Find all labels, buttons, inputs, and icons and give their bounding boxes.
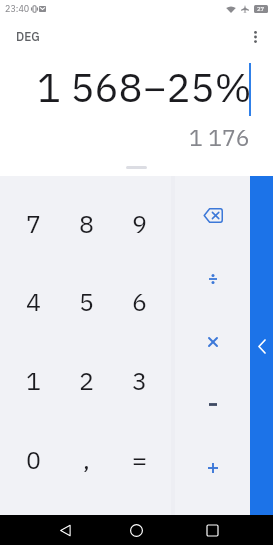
button[interactable]: Back xyxy=(47,515,83,545)
button[interactable]: Backspace xyxy=(175,184,250,247)
staticText: 6 xyxy=(132,285,148,318)
button[interactable]: Show more xyxy=(250,324,273,368)
button[interactable]: 5 xyxy=(60,262,113,341)
staticText: 23:40 xyxy=(5,3,30,15)
button[interactable]: 7 xyxy=(7,184,60,262)
staticText: 1 568−25% xyxy=(37,61,252,113)
button[interactable]: 1 xyxy=(7,341,60,420)
button[interactable]: DEG xyxy=(6,22,50,52)
button[interactable]: Divide xyxy=(175,247,250,310)
button[interactable]: 9 xyxy=(113,184,166,262)
button[interactable]: 6 xyxy=(113,262,166,341)
button[interactable]: 4 xyxy=(7,262,60,341)
staticText: 1 176 xyxy=(189,122,250,152)
staticText: 27 xyxy=(257,5,265,13)
button[interactable]: 0 xyxy=(7,420,60,499)
staticText: 4 xyxy=(26,285,42,318)
button[interactable]: Drag handle xyxy=(0,160,273,174)
staticText: 1 xyxy=(26,364,42,397)
button[interactable]: , xyxy=(60,420,113,499)
button[interactable]: Multiply xyxy=(175,310,250,373)
button[interactable]: Subtract xyxy=(175,373,250,436)
staticText: , xyxy=(83,443,90,476)
button[interactable]: Recents xyxy=(194,515,230,545)
button[interactable]: 2 xyxy=(60,341,113,420)
staticText: 8 xyxy=(79,207,95,240)
staticText: DEG xyxy=(16,29,40,45)
staticText: 3 xyxy=(132,364,148,397)
staticText: 5 xyxy=(79,285,95,318)
button[interactable]: Add xyxy=(175,436,250,499)
button[interactable]: 3 xyxy=(113,341,166,420)
staticText: 7 xyxy=(26,207,42,240)
staticText: 2 xyxy=(79,364,95,397)
button[interactable]: = xyxy=(113,420,166,499)
button[interactable]: 8 xyxy=(60,184,113,262)
staticText: = xyxy=(132,443,148,476)
button[interactable]: More options xyxy=(237,19,273,55)
staticText: 9 xyxy=(132,207,148,240)
staticText: 0 xyxy=(26,443,42,476)
button[interactable]: Home xyxy=(118,515,154,545)
